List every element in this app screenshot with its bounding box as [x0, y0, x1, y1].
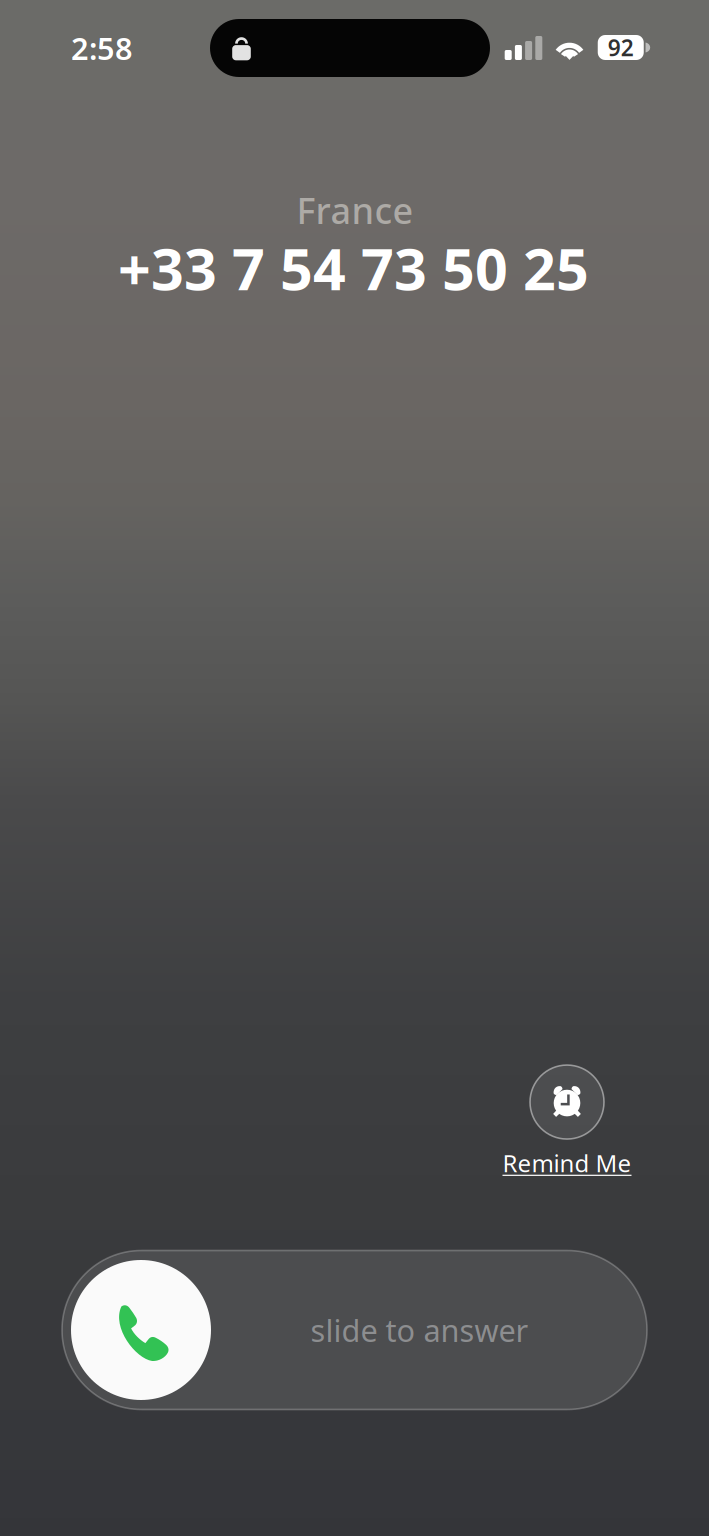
- staticText: slide to answer: [310, 1310, 528, 1350]
- button[interactable]: slide to answer: [62, 1250, 647, 1409]
- staticText: France: [296, 186, 413, 234]
- button[interactable]: Remind Me: [457, 1058, 677, 1186]
- staticText: 92: [608, 32, 634, 62]
- staticText: Remind Me: [502, 1147, 631, 1179]
- staticText: 2:58: [71, 28, 133, 68]
- staticText: +33 7 54 73 50 25: [118, 230, 589, 306]
